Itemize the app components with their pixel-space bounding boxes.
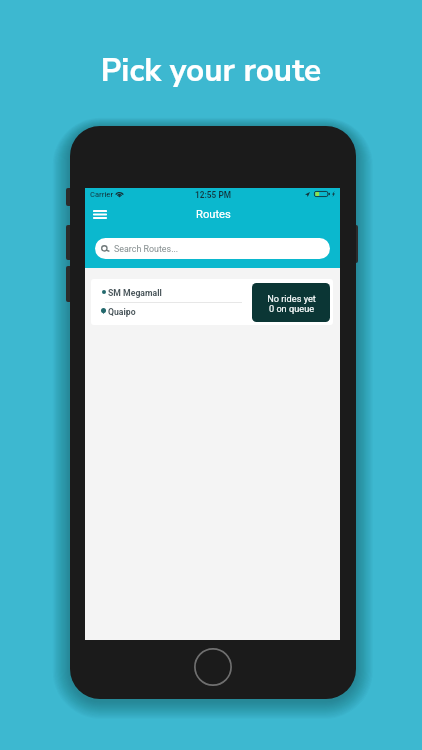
staticText: Carrier	[90, 190, 114, 199]
staticText: Pick your route	[0, 49, 422, 92]
staticText: Routes	[196, 208, 231, 221]
staticText: No rides yet 0 on queue	[267, 293, 316, 314]
button[interactable]: SM Megamall	[91, 279, 333, 325]
staticText: SM Megamall	[108, 288, 162, 298]
button[interactable]: Search Routes...	[95, 238, 330, 259]
button[interactable]: No rides yet 0 on queue	[252, 283, 330, 322]
staticText: 12:55 PM	[195, 190, 232, 200]
staticText: Quaipo	[108, 307, 136, 317]
button[interactable]: Open navigation menu	[88, 202, 112, 226]
staticText: Search Routes...	[114, 244, 179, 254]
